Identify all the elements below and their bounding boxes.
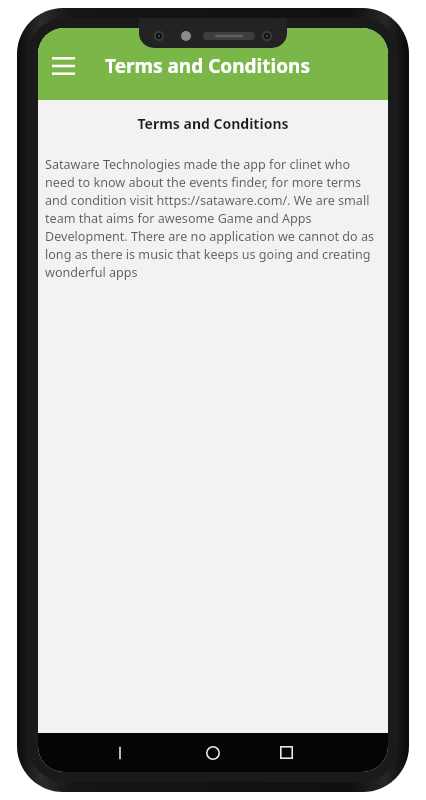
button[interactable]: Open navigation menu	[47, 50, 79, 82]
staticText: Terms and Conditions	[105, 53, 310, 79]
staticText: Terms and Conditions	[38, 114, 388, 133]
button[interactable]: Recent apps	[266, 733, 306, 772]
staticText: Sataware Technologies made the app for c…	[45, 156, 381, 281]
button[interactable]: Home	[193, 733, 233, 772]
